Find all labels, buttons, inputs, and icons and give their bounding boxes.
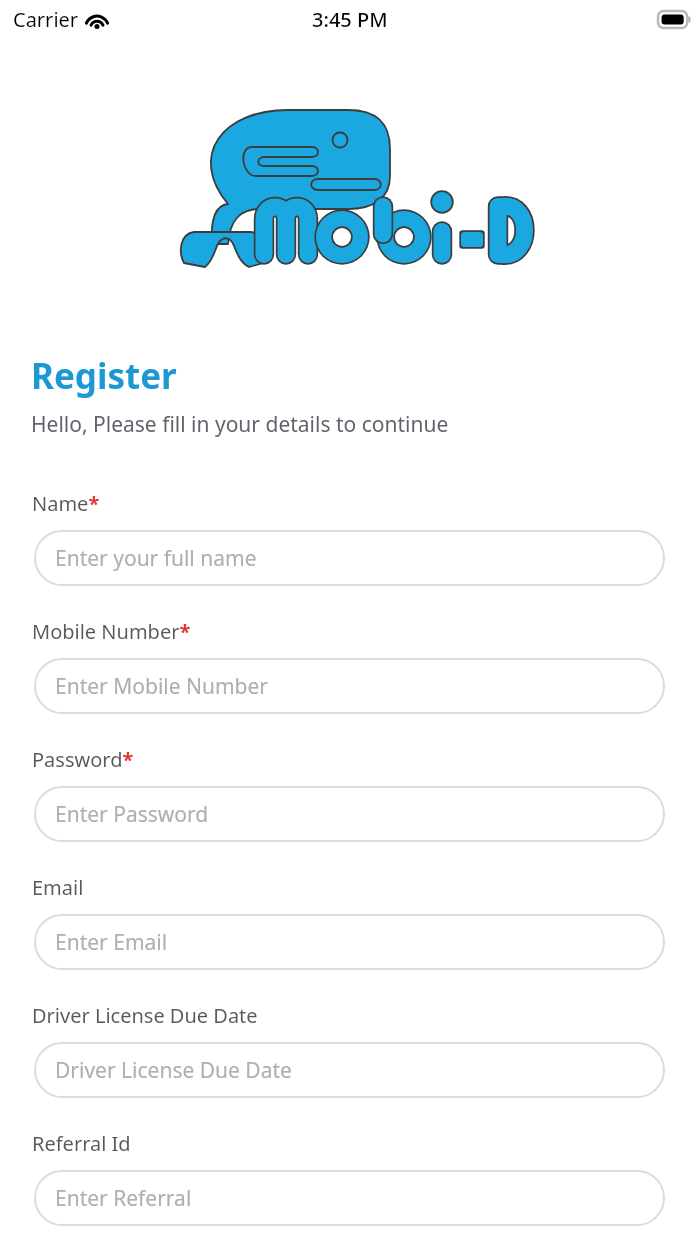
staticText: Enter your full name xyxy=(55,544,257,573)
staticText: Mobile Number* xyxy=(32,618,191,645)
button[interactable]: Driver License Due Date xyxy=(34,1042,665,1098)
staticText: 3:45 PM xyxy=(312,6,388,33)
staticText: Enter Password xyxy=(55,800,209,829)
other: Battery full xyxy=(658,11,692,28)
other: Mobi-D logo xyxy=(176,106,528,270)
button[interactable]: Enter Referral xyxy=(34,1170,665,1226)
button[interactable]: Enter Mobile Number xyxy=(34,658,665,714)
staticText: Name* xyxy=(32,490,100,517)
staticText: Driver License Due Date xyxy=(32,1002,258,1029)
staticText: Email xyxy=(32,874,84,901)
staticText: Register xyxy=(31,352,177,400)
button[interactable]: Enter Email xyxy=(34,914,665,970)
staticText: Enter Referral xyxy=(55,1184,192,1213)
staticText: Enter Mobile Number xyxy=(55,672,269,701)
button[interactable]: Enter Password xyxy=(34,786,665,842)
button[interactable]: Enter your full name xyxy=(34,530,665,586)
staticText: Password* xyxy=(32,746,134,773)
staticText: Enter Email xyxy=(55,928,168,957)
staticText: Carrier xyxy=(13,6,79,33)
staticText: Driver License Due Date xyxy=(55,1056,292,1085)
staticText: Hello, Please fill in your details to co… xyxy=(31,410,449,439)
other: Wi-Fi xyxy=(85,10,109,29)
staticText: Referral Id xyxy=(32,1130,131,1157)
